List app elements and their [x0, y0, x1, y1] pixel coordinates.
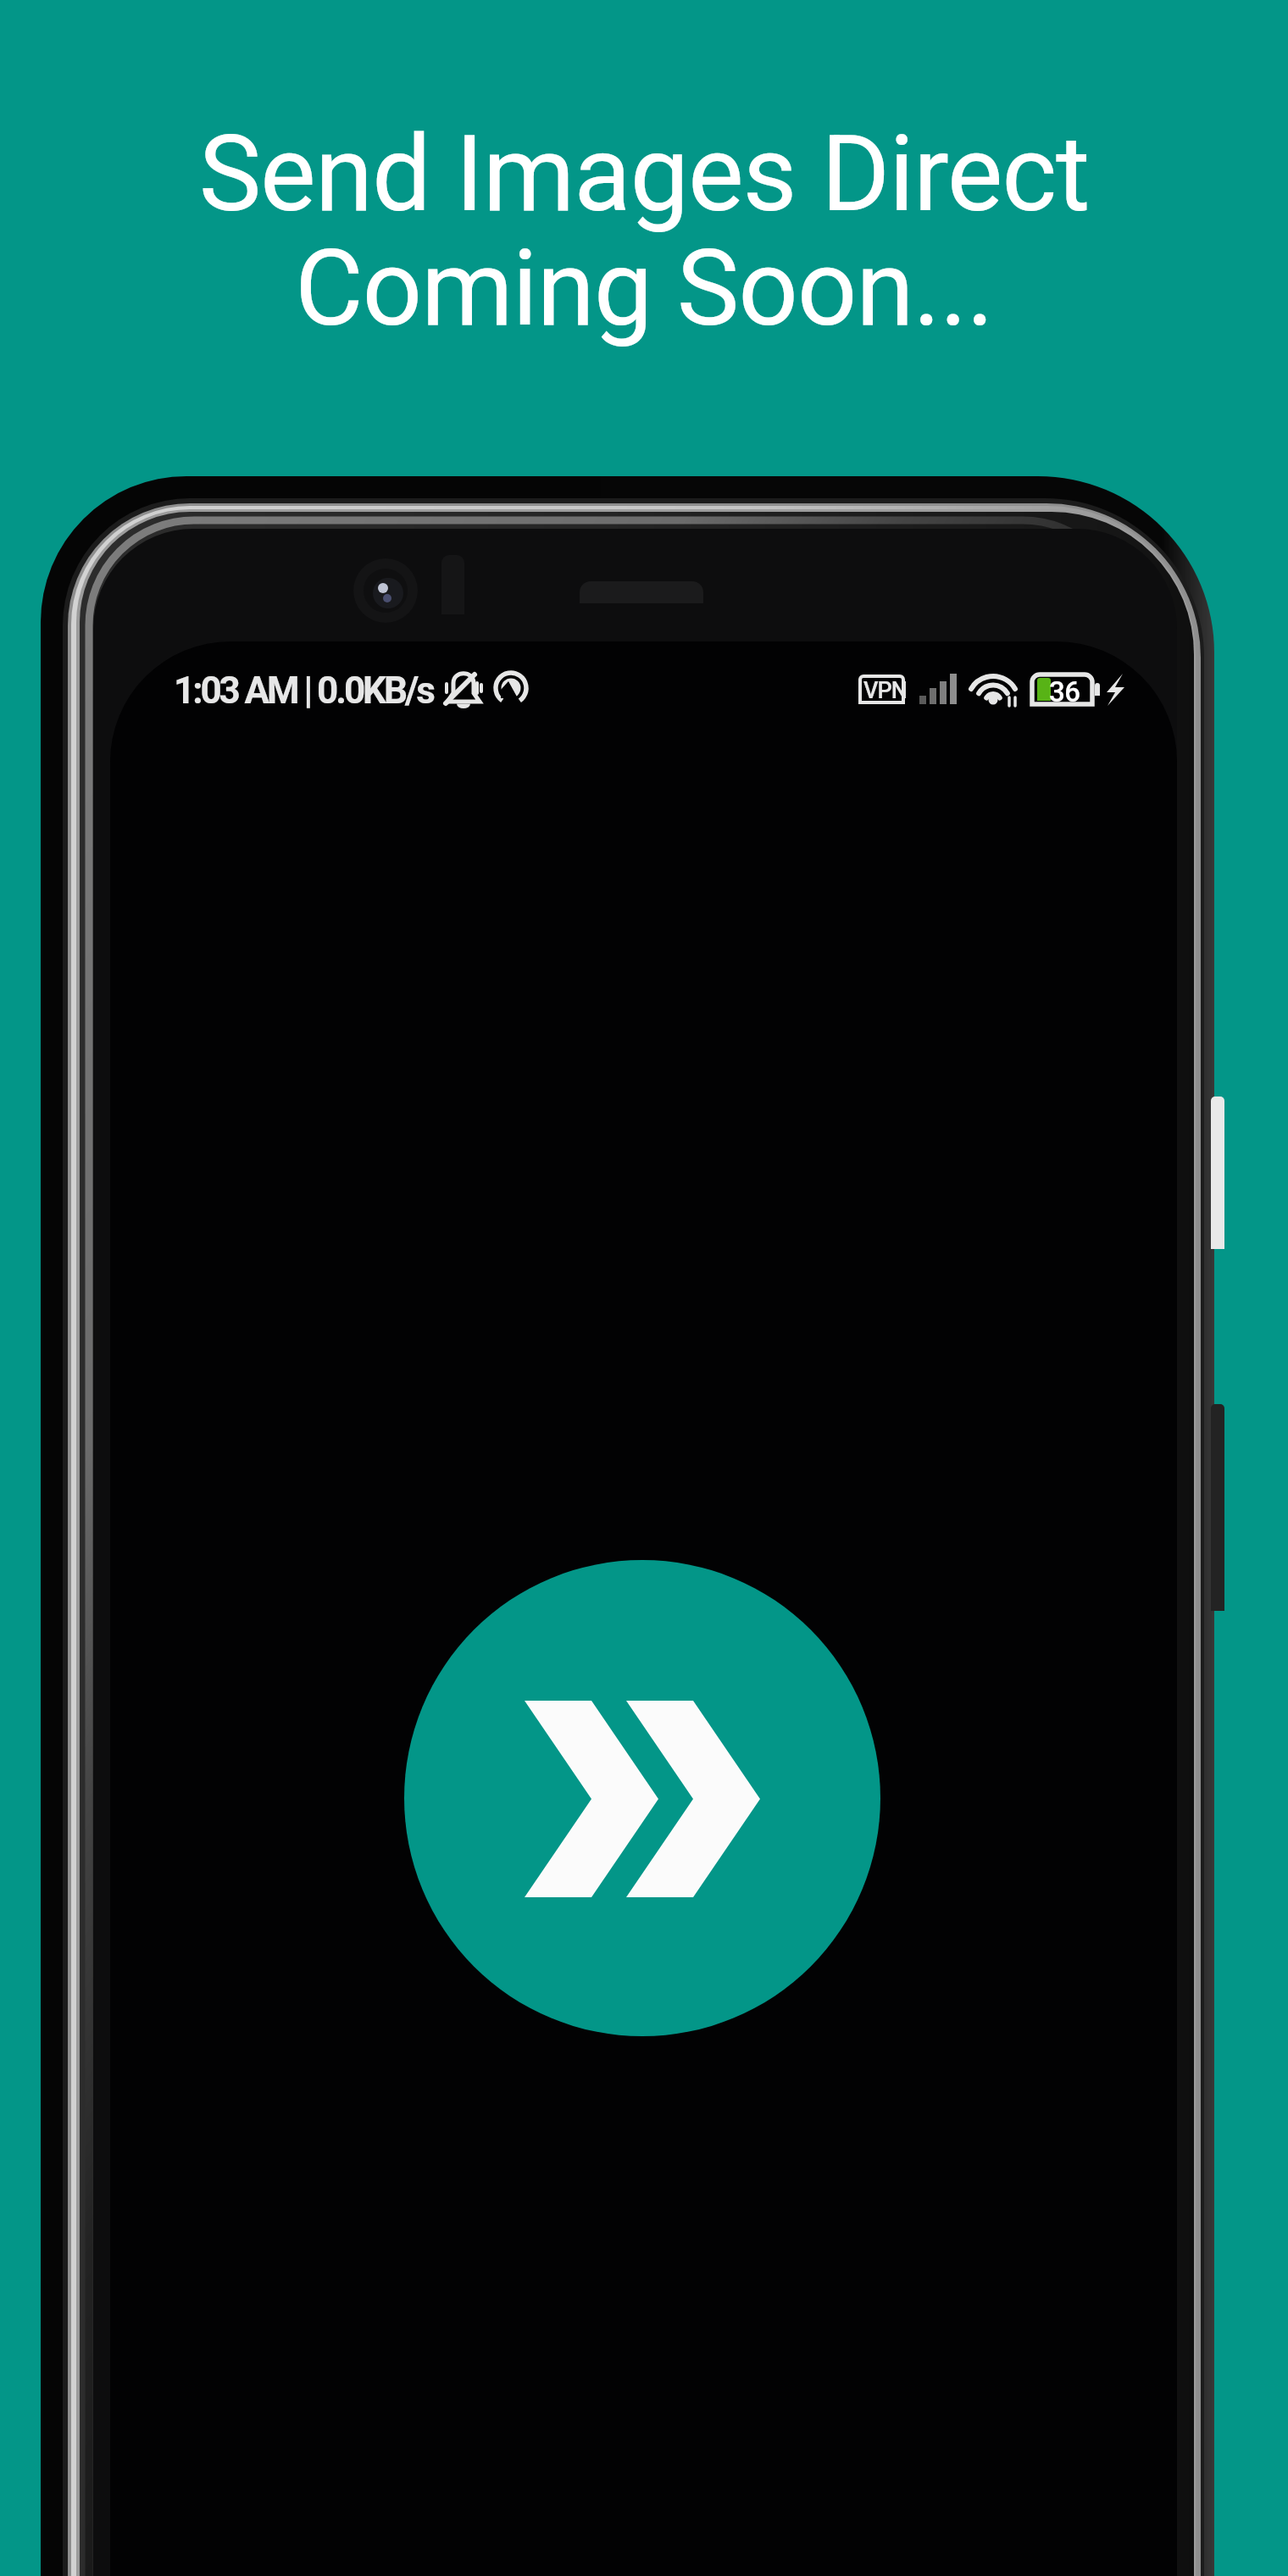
staticText: 1:03 AM | 0.0KB/s [174, 669, 433, 713]
staticText: 36 [1049, 675, 1080, 708]
button[interactable]: Send Images Direct app logo [404, 1560, 880, 2036]
staticText: Send Images Direct Coming Soon... [0, 113, 1288, 2576]
staticText: VPN [863, 677, 907, 704]
